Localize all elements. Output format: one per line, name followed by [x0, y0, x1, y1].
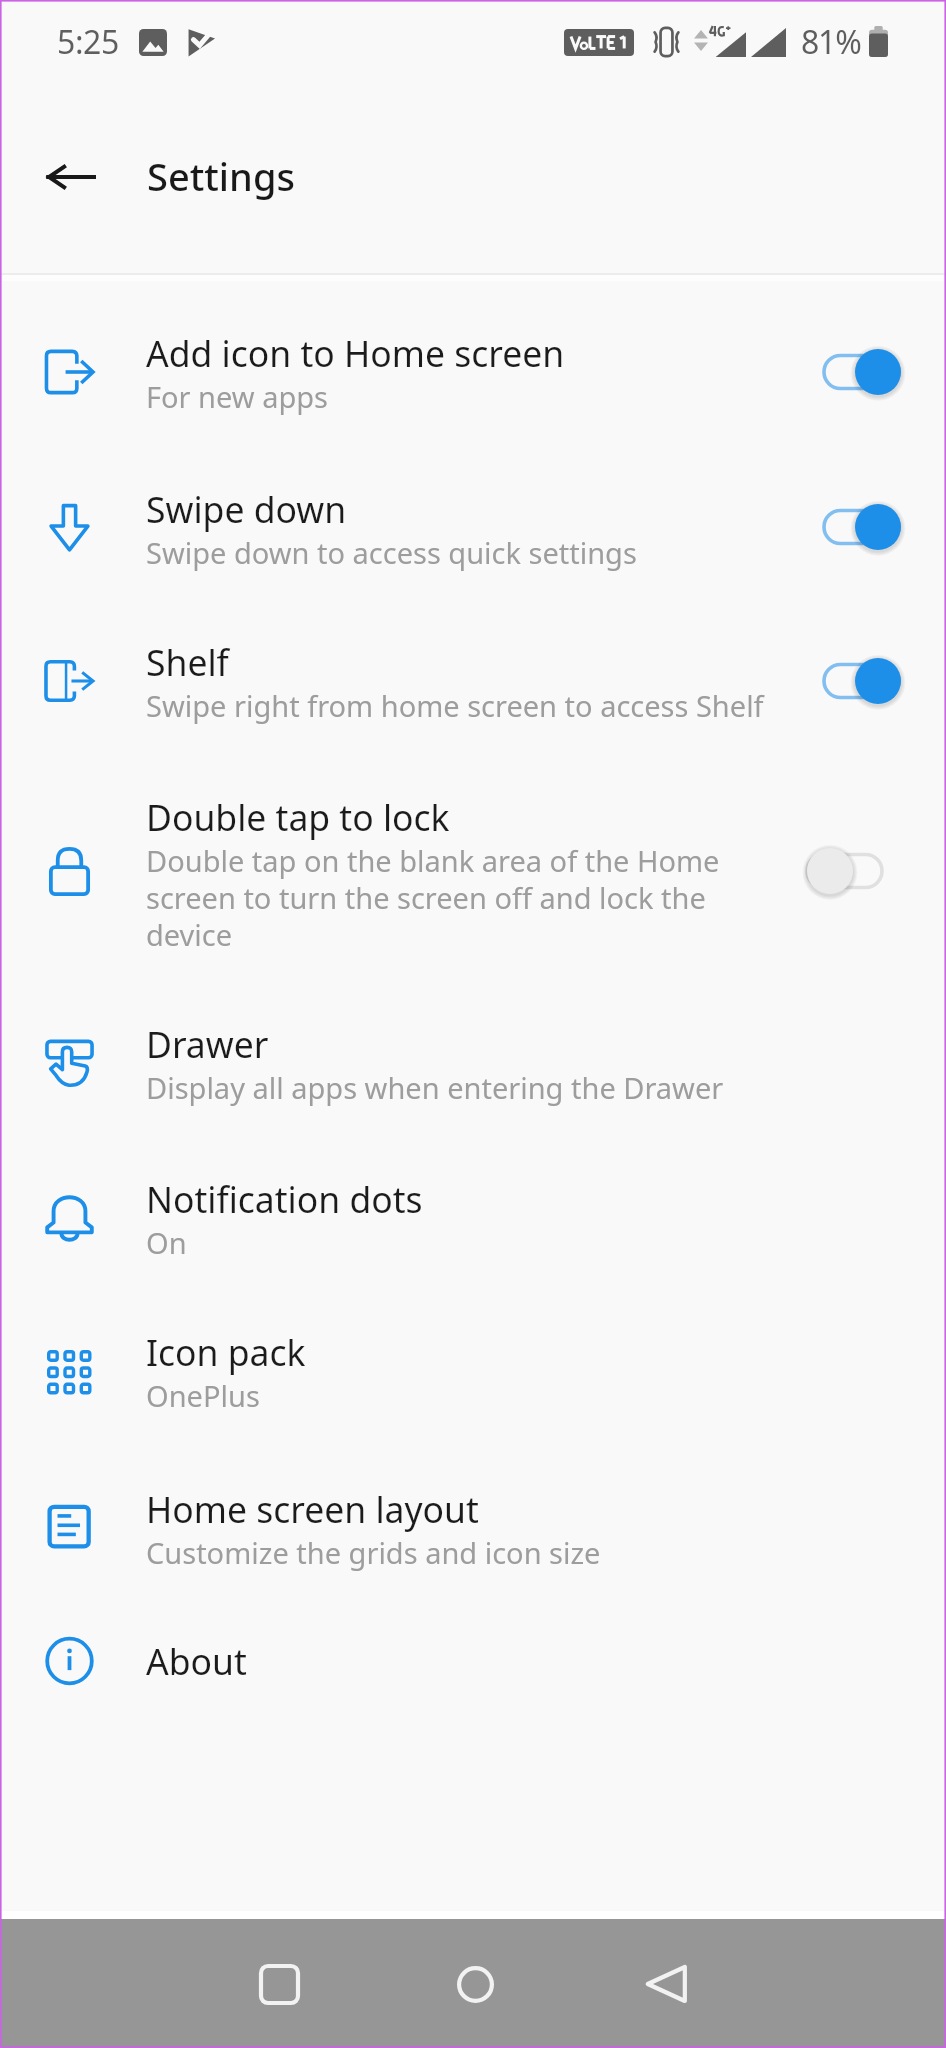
- staticText: 81%: [801, 20, 861, 64]
- button[interactable]: Back: [611, 1929, 721, 2039]
- staticText: About: [146, 1637, 247, 1685]
- staticText: Swipe down: [146, 485, 347, 533]
- staticText: OnePlus: [146, 1376, 260, 1415]
- staticText: Shelf: [146, 638, 229, 686]
- button[interactable]: Home: [420, 1929, 530, 2039]
- staticText: 5:25: [57, 20, 119, 64]
- button[interactable]: Back: [26, 133, 114, 221]
- staticText: Add icon to Home screen: [146, 329, 565, 377]
- button[interactable]: Add icon to Home screen: [0, 305, 946, 438]
- staticText: Swipe down to access quick settings: [146, 533, 637, 572]
- staticText: On: [146, 1223, 187, 1262]
- staticText: Display all apps when entering the Drawe…: [146, 1068, 724, 1107]
- button[interactable]: Toggle Shelf: [800, 651, 910, 711]
- staticText: For new apps: [146, 377, 328, 416]
- button[interactable]: Double tap to lock: [0, 769, 946, 976]
- button[interactable]: Icon pack: [0, 1304, 946, 1437]
- button[interactable]: Swipe down: [0, 461, 946, 594]
- button[interactable]: Home screen layout: [0, 1461, 946, 1594]
- button[interactable]: Notification dots: [0, 1151, 946, 1284]
- staticText: Home screen layout: [146, 1485, 479, 1533]
- button[interactable]: About: [0, 1613, 946, 1696]
- button[interactable]: Toggle Swipe down: [800, 497, 910, 557]
- staticText: Settings: [147, 150, 295, 202]
- staticText: Icon pack: [146, 1328, 306, 1376]
- button[interactable]: Shelf: [0, 614, 946, 747]
- staticText: Swipe right from home screen to access S…: [146, 686, 764, 725]
- button[interactable]: Recent apps: [224, 1929, 334, 2039]
- staticText: Drawer: [146, 1020, 269, 1068]
- button[interactable]: Drawer: [0, 996, 946, 1129]
- staticText: Double tap to lock: [146, 793, 450, 841]
- button[interactable]: Toggle Add icon to Home screen: [800, 342, 910, 402]
- staticText: Customize the grids and icon size: [146, 1533, 601, 1572]
- staticText: Double tap on the blank area of the Home…: [146, 841, 720, 955]
- button[interactable]: Toggle Double tap to lock: [800, 841, 910, 901]
- staticText: Notification dots: [146, 1175, 423, 1223]
